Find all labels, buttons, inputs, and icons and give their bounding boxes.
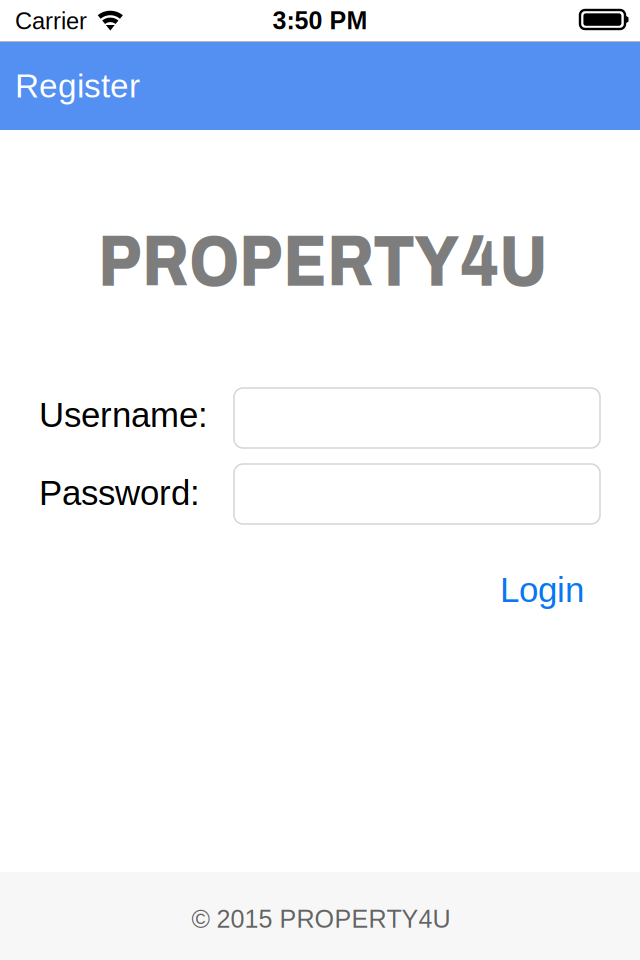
staticText: Username:	[39, 396, 208, 434]
staticText: Register	[15, 67, 140, 105]
staticText: Carrier	[15, 8, 87, 34]
button[interactable]: Username	[234, 388, 600, 448]
staticText: 3:50 PM	[272, 6, 367, 34]
staticText: © 2015 PROPERTY4U	[191, 905, 450, 933]
button[interactable]: Password	[234, 464, 600, 524]
staticText: PROPERTY4U	[98, 228, 548, 296]
staticText: Password:	[39, 474, 200, 512]
staticText: Login	[500, 570, 584, 609]
button[interactable]: Login	[404, 568, 584, 612]
button[interactable]: Register	[0, 42, 640, 130]
